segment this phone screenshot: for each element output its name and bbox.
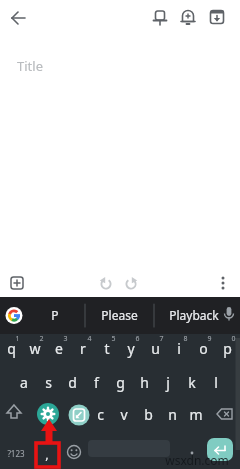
staticText: 0 <box>231 334 236 344</box>
button[interactable]: , <box>39 445 55 461</box>
staticText: u <box>151 339 160 358</box>
staticText: b <box>144 405 153 424</box>
staticText: e <box>55 339 63 358</box>
staticText: 4 <box>87 334 92 344</box>
button[interactable]: u <box>144 338 166 358</box>
staticText: P <box>51 307 59 323</box>
button[interactable]: s <box>37 372 59 392</box>
staticText: h <box>140 373 149 392</box>
staticText: k <box>188 373 196 392</box>
staticText: w <box>29 339 41 358</box>
button[interactable] <box>210 270 236 296</box>
button[interactable] <box>204 6 230 32</box>
staticText: ?123 <box>7 448 25 459</box>
staticText: y <box>127 339 135 358</box>
staticText: 8 <box>183 334 188 344</box>
staticText: g <box>116 373 125 392</box>
staticText: , <box>45 445 49 461</box>
staticText: 2 <box>39 334 44 344</box>
button[interactable]: g <box>109 372 131 392</box>
button[interactable]: Playback <box>163 306 225 324</box>
button[interactable]: m <box>185 404 207 424</box>
button[interactable]: e <box>48 338 70 358</box>
button[interactable] <box>147 6 173 32</box>
button[interactable]: Please <box>91 306 147 324</box>
button[interactable]: ?123 <box>1 445 31 461</box>
staticText: wsxdn.com <box>165 452 229 468</box>
button[interactable]: a <box>13 372 35 392</box>
button[interactable] <box>207 438 233 461</box>
staticText: f <box>94 373 99 392</box>
button[interactable]: y <box>120 338 142 358</box>
button[interactable]: w <box>24 338 46 358</box>
staticText: 1 <box>15 334 20 344</box>
button[interactable]: c <box>89 404 111 424</box>
staticText: r <box>80 339 86 358</box>
button[interactable] <box>65 403 87 425</box>
staticText: i <box>177 339 181 358</box>
staticText: 5 <box>111 334 116 344</box>
staticText: a <box>20 373 28 392</box>
staticText: j <box>166 373 170 392</box>
staticText: c <box>97 405 104 424</box>
button[interactable]: d <box>61 372 83 392</box>
staticText: Please <box>101 307 138 323</box>
button[interactable]: h <box>133 372 155 392</box>
button[interactable]: t <box>96 338 118 358</box>
button[interactable] <box>220 304 238 326</box>
button[interactable]: v <box>113 404 135 424</box>
staticText: s <box>45 373 52 392</box>
staticText: 3 <box>63 334 68 344</box>
button[interactable] <box>213 403 237 425</box>
button[interactable] <box>93 271 119 297</box>
staticText: 7 <box>159 334 164 344</box>
button[interactable]: r <box>72 338 94 358</box>
button[interactable] <box>183 443 201 461</box>
button[interactable] <box>5 306 23 324</box>
button[interactable]: o <box>192 338 214 358</box>
button[interactable]: b <box>137 404 159 424</box>
button[interactable]: l <box>205 372 227 392</box>
button[interactable] <box>37 403 59 425</box>
button[interactable] <box>175 6 201 32</box>
button[interactable]: j <box>157 372 179 392</box>
staticText: o <box>199 339 208 358</box>
staticText: Title <box>17 57 43 74</box>
button[interactable] <box>64 442 84 462</box>
button[interactable]: i <box>168 338 190 358</box>
button[interactable] <box>4 270 30 296</box>
staticText: q <box>7 339 16 358</box>
staticText: n <box>168 405 177 424</box>
button[interactable] <box>2 402 26 424</box>
button[interactable]: q <box>0 338 22 358</box>
button[interactable] <box>4 6 30 32</box>
staticText: v <box>120 405 128 424</box>
staticText: l <box>214 373 218 392</box>
button[interactable]: P <box>35 306 75 324</box>
staticText: d <box>68 373 77 392</box>
staticText: t <box>104 339 110 358</box>
button[interactable]: f <box>85 372 107 392</box>
staticText: Playback <box>169 307 219 323</box>
staticText: 6 <box>135 334 140 344</box>
button[interactable]: p <box>216 338 238 358</box>
staticText: 9 <box>207 334 212 344</box>
button[interactable] <box>118 271 144 297</box>
staticText: p <box>223 339 232 358</box>
staticText: m <box>189 405 203 424</box>
button[interactable]: k <box>181 372 203 392</box>
button[interactable]: n <box>161 404 183 424</box>
